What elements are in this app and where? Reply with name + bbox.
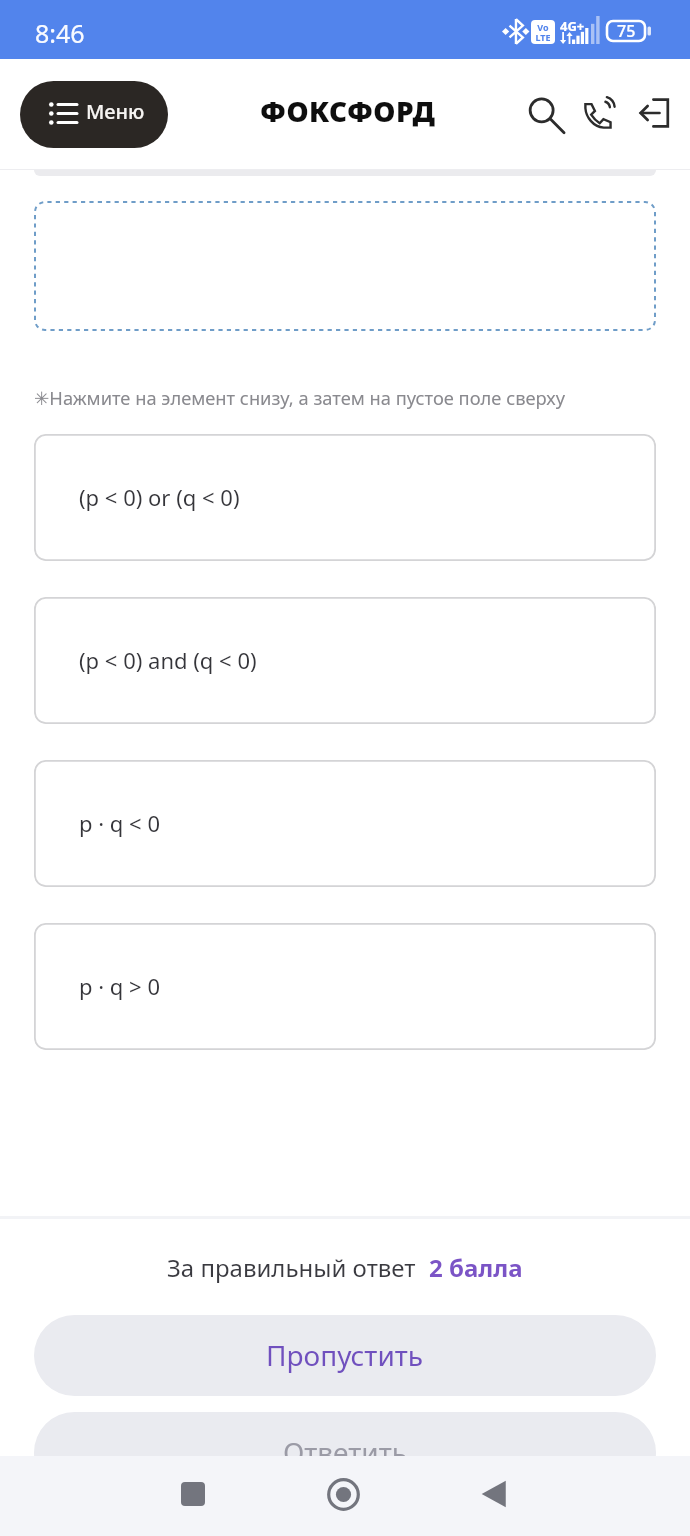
staticText: За правильный ответ bbox=[167, 1251, 416, 1284]
button[interactable]: Пропустить bbox=[34, 1315, 656, 1396]
staticText: (p < 0) or (q < 0) bbox=[79, 482, 240, 512]
staticText: ФОКСФОРД bbox=[260, 92, 436, 130]
staticText: Пропустить bbox=[266, 1336, 424, 1374]
button[interactable]: Ответить bbox=[34, 1412, 656, 1456]
staticText: 75 bbox=[617, 20, 636, 40]
button[interactable]: (p < 0) and (q < 0) bbox=[34, 597, 656, 724]
button[interactable]: Recents bbox=[161, 1462, 225, 1526]
button[interactable]: Меню bbox=[20, 81, 168, 148]
button[interactable]: Home bbox=[311, 1462, 375, 1526]
staticText: Ответить bbox=[283, 1433, 407, 1456]
staticText: 4G+ bbox=[560, 17, 585, 35]
button[interactable]: p · q > 0 bbox=[34, 923, 656, 1050]
button[interactable]: p · q < 0 bbox=[34, 760, 656, 887]
staticText: p · q > 0 bbox=[79, 971, 161, 1001]
button[interactable]: Exit bbox=[631, 89, 679, 137]
staticText: 2 балла bbox=[429, 1251, 523, 1284]
staticText: p · q < 0 bbox=[79, 808, 161, 838]
button[interactable]: (p < 0) or (q < 0) bbox=[34, 434, 656, 561]
staticText: Меню bbox=[86, 98, 145, 125]
staticText: Vo LTE bbox=[535, 21, 551, 43]
button[interactable]: Search bbox=[519, 89, 567, 137]
button[interactable]: Back bbox=[462, 1462, 526, 1526]
staticText: ✳Нажмите на элемент снизу, а затем на пу… bbox=[34, 385, 565, 410]
staticText: 8:46 bbox=[35, 16, 85, 50]
staticText: (p < 0) and (q < 0) bbox=[79, 645, 257, 675]
button[interactable]: Call bbox=[575, 89, 623, 137]
